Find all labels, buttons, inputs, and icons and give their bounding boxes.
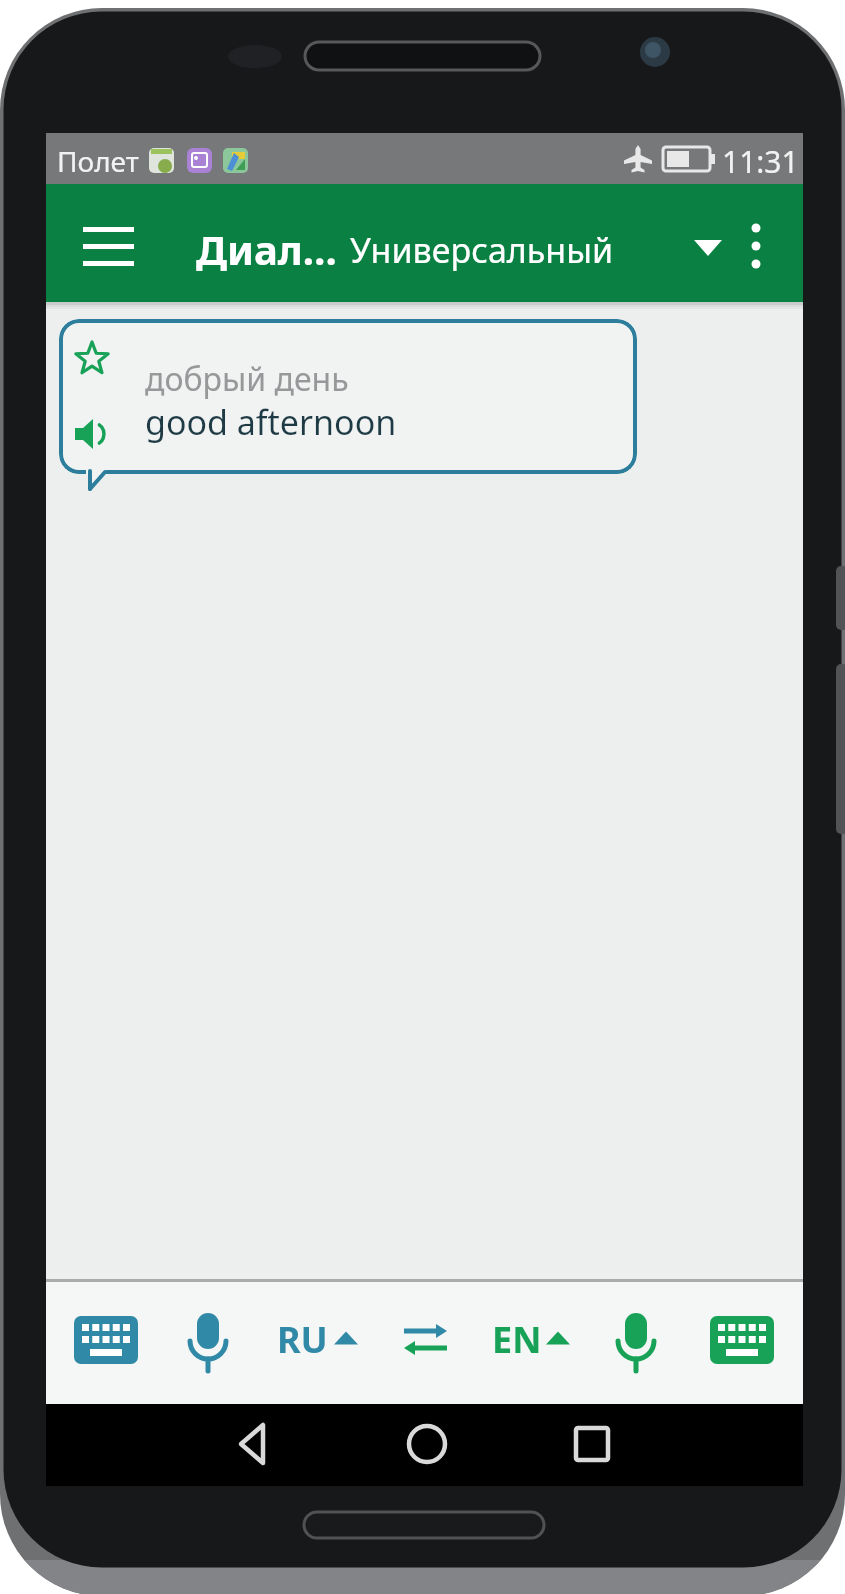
staticText: EN (492, 1315, 542, 1364)
button[interactable] (736, 214, 776, 274)
staticText: Диал… (196, 222, 337, 276)
staticText: good afternoon (145, 399, 397, 445)
button[interactable] (59, 319, 637, 474)
button[interactable] (710, 1316, 774, 1364)
button[interactable]: EN (486, 1312, 578, 1362)
button[interactable] (400, 1312, 452, 1362)
button[interactable] (74, 341, 110, 377)
staticText: 11:31 (722, 141, 799, 182)
button[interactable] (614, 1310, 658, 1376)
button[interactable]: Универсальный (346, 204, 736, 284)
staticText: добрый день (145, 357, 349, 401)
button[interactable] (74, 1316, 138, 1364)
staticText: Полет (57, 142, 139, 180)
button[interactable] (568, 1420, 616, 1468)
button[interactable] (230, 1420, 278, 1468)
staticText: RU (277, 1315, 328, 1364)
button[interactable] (72, 416, 110, 452)
button[interactable]: RU (270, 1312, 362, 1362)
staticText: Универсальный (350, 227, 614, 273)
button[interactable] (76, 220, 134, 266)
button[interactable] (186, 1310, 230, 1376)
button[interactable] (403, 1420, 451, 1468)
